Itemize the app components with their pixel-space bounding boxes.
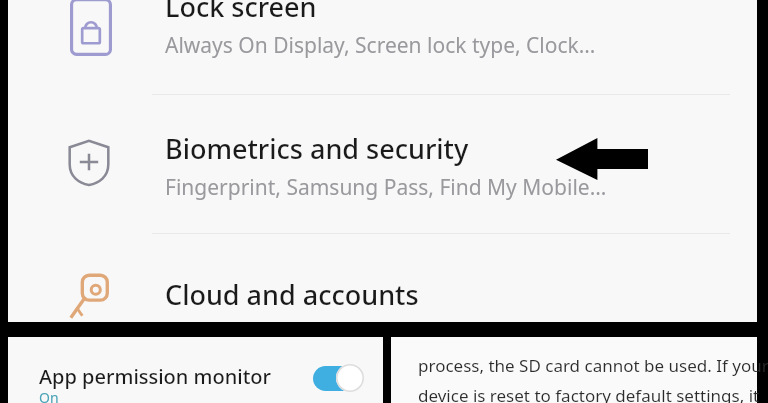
staticText: Biometrics and security xyxy=(165,130,469,167)
staticText: process, the SD card cannot be used. If … xyxy=(418,354,768,377)
button[interactable]: Lock screen xyxy=(8,0,757,94)
staticText: Lock screen xyxy=(165,0,317,25)
staticText: Fingerprint, Samsung Pass, Find My Mobil… xyxy=(165,173,607,202)
staticText: device is reset to factory default setti… xyxy=(418,384,760,403)
staticText: App permission monitor xyxy=(39,363,272,390)
staticText: Cloud and accounts xyxy=(165,276,419,313)
button[interactable]: App permission monitor xyxy=(8,337,383,403)
staticText: On xyxy=(39,388,59,403)
other: Pointer arrow xyxy=(556,138,648,180)
button[interactable]: Cloud and accounts xyxy=(8,234,757,322)
button[interactable]: Biometrics and security xyxy=(8,95,757,233)
button[interactable]: App permission monitor toggle xyxy=(308,363,366,393)
staticText: Always On Display, Screen lock type, Clo… xyxy=(165,31,596,60)
